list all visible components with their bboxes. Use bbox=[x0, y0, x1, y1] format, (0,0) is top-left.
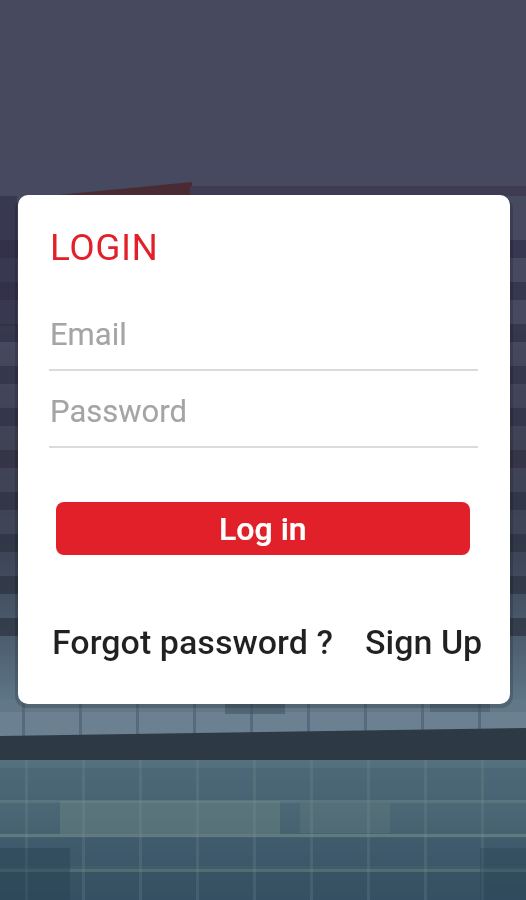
staticText: Log in bbox=[219, 510, 307, 548]
staticText: Password bbox=[50, 393, 187, 429]
staticText: LOGIN bbox=[50, 226, 159, 269]
button[interactable]: Password bbox=[49, 386, 478, 448]
staticText: Sign Up bbox=[365, 622, 483, 662]
button[interactable]: Email bbox=[49, 309, 478, 371]
button[interactable]: Forgot password ? bbox=[52, 622, 333, 662]
button[interactable]: Sign Up bbox=[365, 622, 483, 662]
staticText: Forgot password ? bbox=[52, 622, 333, 662]
staticText: Email bbox=[50, 316, 127, 352]
button[interactable]: Log in bbox=[56, 502, 470, 555]
